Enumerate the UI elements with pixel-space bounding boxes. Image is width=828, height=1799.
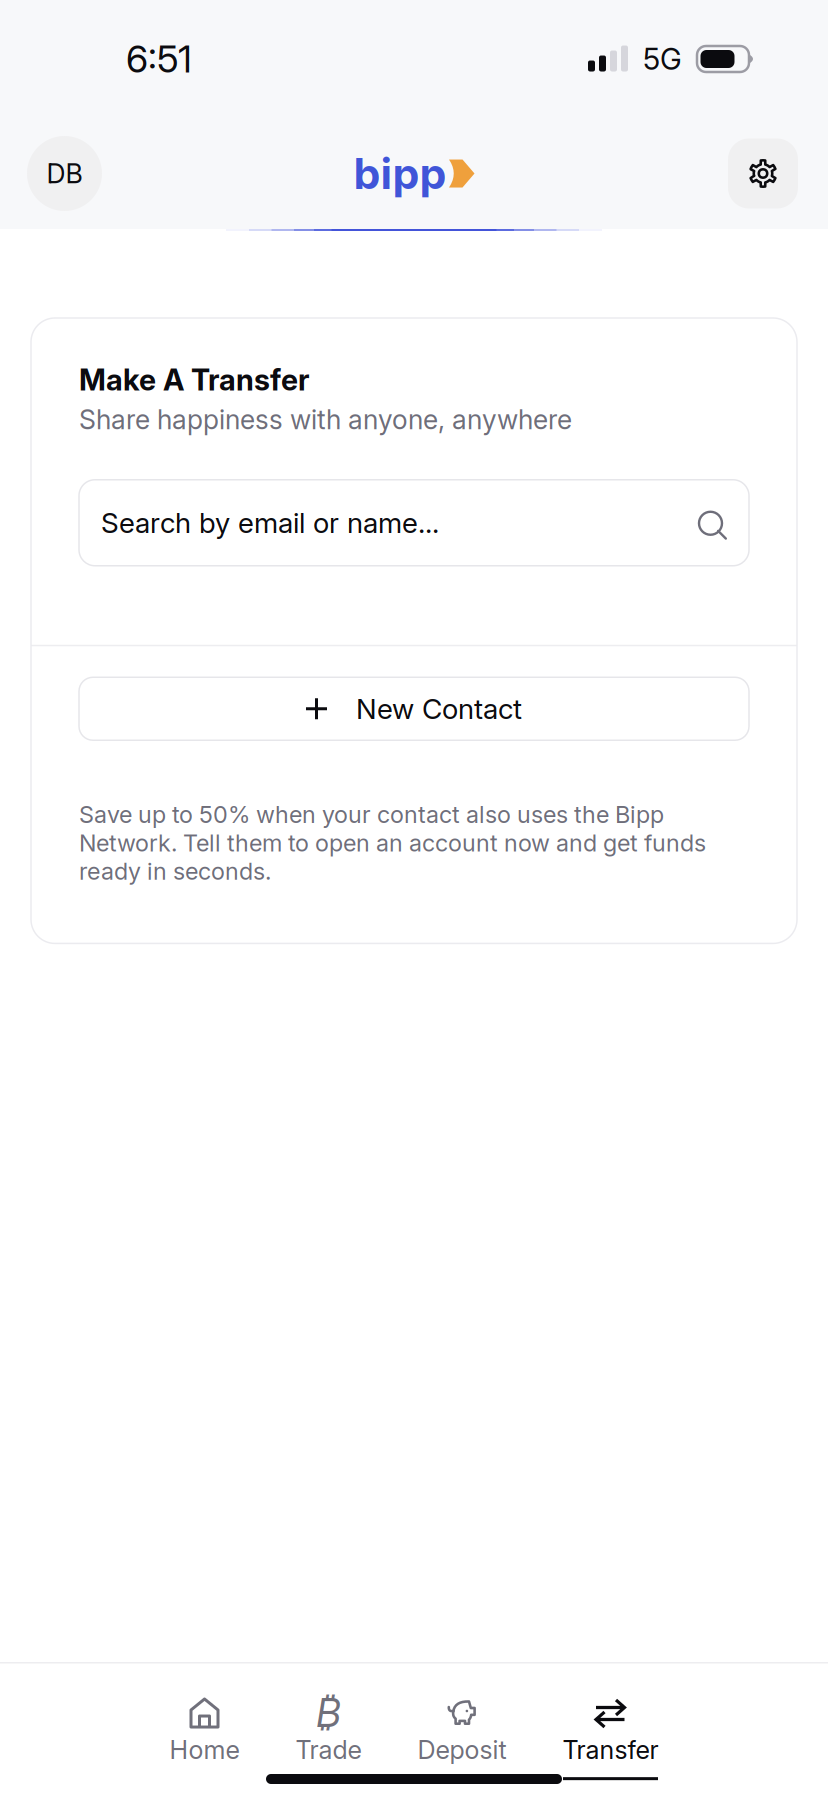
staticText: New Contact (356, 692, 522, 726)
staticText: Home (169, 1734, 239, 1765)
staticText: 5G (643, 41, 682, 77)
staticText: ₿ (316, 1690, 341, 1736)
button[interactable]: Search by email or name... (79, 480, 749, 566)
button[interactable]: Transfer (562, 1696, 658, 1780)
button[interactable]: Deposit (417, 1696, 506, 1780)
staticText: bipp (353, 148, 446, 199)
staticText: DB (46, 157, 82, 190)
button[interactable]: New Contact (79, 677, 749, 740)
staticText: Make A Transfer (79, 362, 310, 397)
staticText: Save up to 50% when your contact also us… (79, 800, 706, 885)
button[interactable]: Settings (728, 138, 798, 208)
staticText: Trade (295, 1734, 361, 1765)
button[interactable]: ₿ (295, 1696, 361, 1780)
button[interactable]: Profile (27, 136, 102, 211)
staticText: Deposit (417, 1734, 506, 1765)
staticText: 6:51 (126, 36, 192, 82)
staticText: Share happiness with anyone, anywhere (79, 403, 572, 436)
button[interactable]: Home (169, 1696, 239, 1780)
staticText: Transfer (562, 1734, 658, 1765)
staticText: Search by email or name... (101, 506, 439, 540)
